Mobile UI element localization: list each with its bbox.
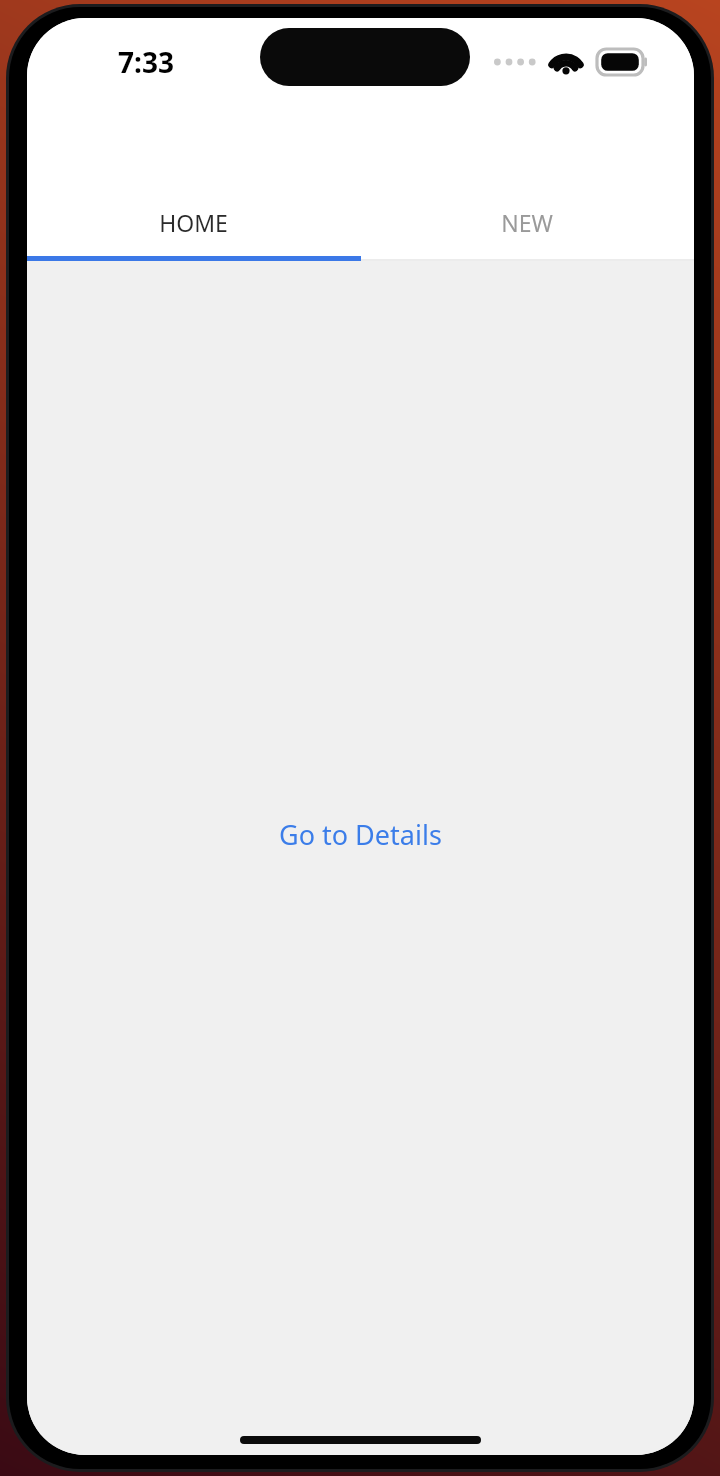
staticText: HOME [159, 207, 228, 238]
button[interactable]: HOME [27, 183, 360, 261]
button[interactable]: Go to Details [271, 812, 450, 857]
button[interactable]: NEW [360, 183, 694, 261]
staticText: Go to Details [279, 816, 442, 853]
staticText: NEW [501, 207, 553, 238]
staticText: 7:33 [118, 43, 174, 81]
